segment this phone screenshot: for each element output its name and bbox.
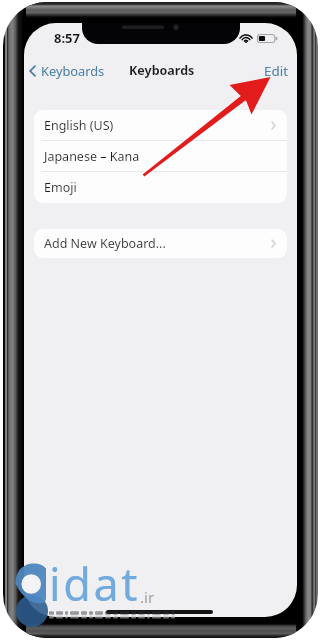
button[interactable]: Edit — [254, 58, 297, 84]
staticText: idat — [49, 553, 141, 614]
staticText: Japanese – Kana — [44, 148, 140, 165]
staticText: English (US) — [44, 117, 114, 134]
button[interactable]: Keyboards — [24, 58, 111, 83]
staticText: Keyboards — [41, 62, 105, 79]
button[interactable]: Emoji — [34, 172, 287, 203]
button[interactable]: English (US) — [34, 110, 287, 141]
staticText: Keyboards — [129, 62, 195, 79]
staticText: Add New Keyboard... — [44, 235, 166, 252]
staticText: 8:57 — [54, 29, 80, 47]
staticText: .ir — [140, 587, 155, 607]
button[interactable]: Japanese – Kana — [34, 141, 287, 172]
button[interactable]: Add New Keyboard... — [34, 229, 287, 258]
staticText: Edit — [264, 62, 288, 80]
staticText: Emoji — [44, 179, 77, 196]
